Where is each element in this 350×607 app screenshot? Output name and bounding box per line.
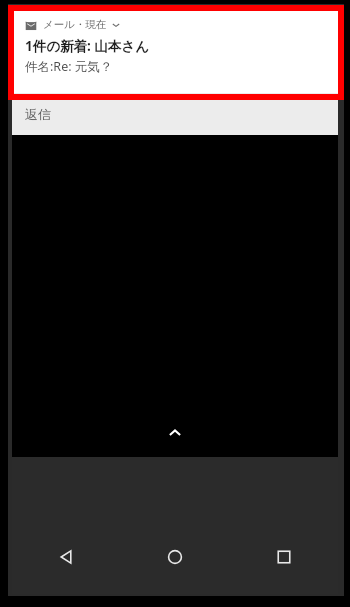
button[interactable]: Home <box>120 538 229 576</box>
button[interactable]: Collapse <box>162 420 188 446</box>
button[interactable]: Back <box>12 538 120 576</box>
button[interactable]: 返信 <box>12 93 338 135</box>
staticText: メール・現在 <box>43 18 107 31</box>
staticText: 件名:Re: 元気？ <box>25 58 113 75</box>
button[interactable]: メール・現在 <box>12 6 338 93</box>
staticText: 1件の新着: 山本さん <box>25 37 149 55</box>
staticText: 返信 <box>25 106 51 122</box>
button[interactable]: Recent apps <box>229 538 338 576</box>
